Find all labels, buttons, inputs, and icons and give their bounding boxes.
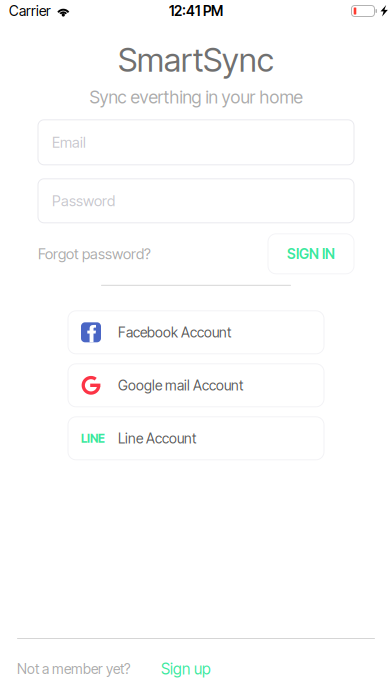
staticText: Facebook Account: [118, 324, 231, 341]
button[interactable]: Facebook Account: [68, 311, 324, 354]
button[interactable]: Email: [38, 120, 354, 165]
staticText: Password: [52, 192, 115, 210]
button[interactable]: LINE: [68, 417, 324, 460]
staticText: LINE: [81, 431, 105, 446]
button[interactable]: Forgot password?: [38, 233, 151, 275]
button[interactable]: Sign up: [161, 660, 211, 678]
staticText: SmartSync: [118, 40, 274, 79]
staticText: Sign up: [161, 660, 211, 678]
button[interactable]: Google mail Account: [68, 364, 324, 407]
staticText: Email: [52, 133, 86, 151]
staticText: SIGN IN: [287, 245, 335, 262]
staticText: Forgot password?: [38, 245, 151, 263]
staticText: Line Account: [118, 430, 196, 447]
staticText: Google mail Account: [118, 377, 243, 394]
staticText: Not a member yet?: [17, 660, 130, 677]
button[interactable]: Password: [38, 179, 354, 223]
staticText: 12:41 PM: [169, 2, 223, 19]
button[interactable]: SIGN IN: [268, 234, 354, 274]
staticText: Sync everthing in your home: [89, 86, 302, 108]
staticText: Carrier: [9, 2, 51, 19]
